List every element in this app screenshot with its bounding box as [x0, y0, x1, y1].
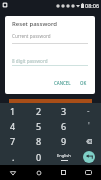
staticText: 2: [36, 105, 42, 117]
staticText: -: [87, 105, 90, 116]
button[interactable]: Back: [0, 165, 26, 180]
staticText: 8: [36, 135, 42, 147]
button[interactable]: Backspace: [76, 133, 101, 149]
staticText: 3: [61, 105, 67, 117]
button[interactable]: CANCEL: [52, 78, 73, 88]
staticText: Reset password: [12, 20, 58, 28]
button[interactable]: -: [76, 103, 101, 118]
staticText: 08:06: [85, 2, 100, 9]
button[interactable]: 6: [51, 118, 76, 133]
staticText: 5: [36, 120, 42, 132]
staticText: 6: [61, 120, 67, 132]
other: Backspace: [86, 139, 92, 144]
button[interactable]: Switch keyboard: [76, 165, 101, 180]
staticText: 1: [10, 105, 16, 117]
staticText: 4: [10, 120, 16, 132]
other: Enter: [83, 151, 95, 163]
button[interactable]: Enter: [76, 149, 101, 165]
button[interactable]: Recent apps: [51, 165, 76, 180]
staticText: ': [88, 120, 90, 131]
button[interactable]: 3: [51, 103, 76, 118]
button[interactable]: 5: [26, 118, 51, 133]
button[interactable]: ': [76, 118, 101, 133]
button[interactable]: 0: [26, 149, 51, 165]
staticText: English: [57, 153, 71, 158]
button[interactable]: 8: [26, 133, 51, 149]
staticText: 0: [36, 151, 42, 163]
button[interactable]: 4: [0, 118, 26, 133]
button[interactable]: 9: [51, 133, 76, 149]
button[interactable]: 7: [0, 133, 26, 149]
button[interactable]: 1: [0, 103, 26, 118]
staticText: 9: [61, 135, 67, 147]
button[interactable]: 2: [26, 103, 51, 118]
staticText: OK: [80, 80, 87, 86]
staticText: 7: [10, 135, 16, 147]
button[interactable]: Home: [26, 165, 51, 180]
staticText: 8 digit password: [12, 58, 48, 64]
button[interactable]: English: [51, 149, 76, 165]
button[interactable]: OK: [78, 78, 89, 88]
staticText: Current password: [12, 33, 51, 39]
button[interactable]: .: [0, 149, 26, 165]
staticText: .: [12, 151, 15, 163]
staticText: CANCEL: [54, 80, 71, 86]
